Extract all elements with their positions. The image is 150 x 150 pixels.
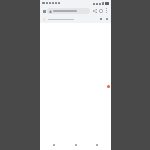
button[interactable]: Share	[92, 8, 97, 13]
button[interactable]	[47, 8, 90, 14]
button[interactable]: Back	[50, 141, 58, 149]
button[interactable]: Scroll marker	[107, 85, 110, 88]
button[interactable]: Bookmark	[99, 17, 103, 21]
button[interactable]: More options	[104, 8, 109, 13]
button[interactable]: Back	[42, 17, 46, 21]
button[interactable]: Recents	[93, 141, 101, 149]
button[interactable]: Refresh	[98, 8, 103, 13]
button[interactable]: Menu	[105, 17, 109, 21]
button[interactable]: Tabs	[42, 9, 46, 13]
button[interactable]: Home	[72, 141, 80, 149]
